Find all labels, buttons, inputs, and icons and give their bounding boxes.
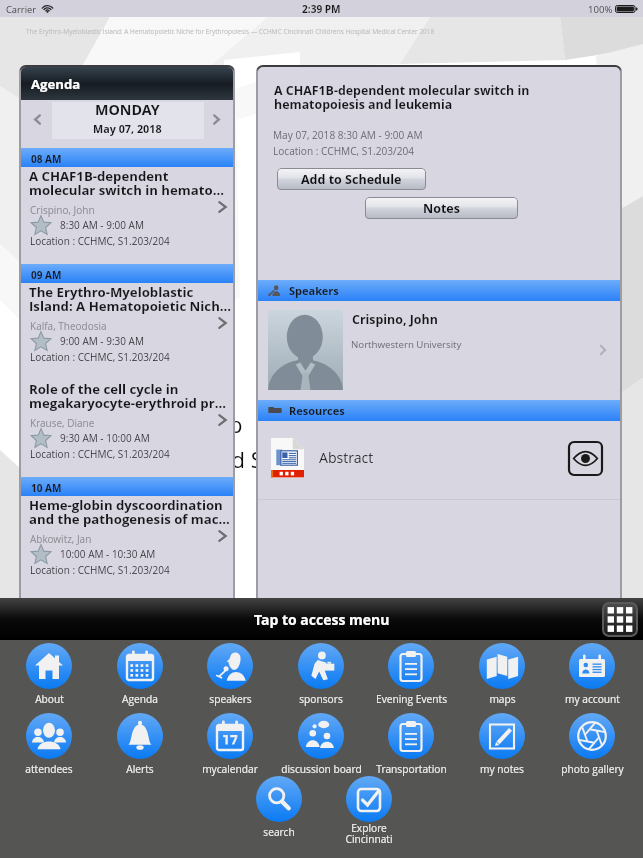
staticText: Northwestern University (351, 338, 462, 351)
button[interactable]: Role of the cell cycle in (21, 380, 233, 477)
staticText: 9:30 AM - 10:00 AM (60, 431, 150, 445)
button[interactable]: speakers (185, 643, 275, 711)
staticText: 9:00 AM - 9:30 AM (60, 334, 144, 348)
button[interactable]: A CHAF1B-dependent (21, 167, 233, 264)
button[interactable]: sponsors (276, 643, 366, 711)
staticText: Island: A Hematopoietic Nich… (29, 297, 232, 315)
button[interactable]: Open menu (602, 602, 638, 637)
staticText: 09 AM (31, 268, 62, 282)
button[interactable]: attendees (4, 713, 94, 781)
staticText: 08 AM (31, 152, 62, 166)
staticText: Abkowitz, Jan (30, 532, 92, 546)
staticText: Explore (351, 821, 387, 835)
button[interactable]: my notes (457, 713, 547, 781)
staticText: mycalendar (202, 762, 258, 776)
staticText: maps (489, 692, 516, 706)
button[interactable]: photo gallery (547, 713, 637, 781)
button[interactable]: Agenda (21, 67, 233, 100)
button[interactable]: Heme-globin dyscoordination (21, 496, 233, 593)
staticText: MONDAY (95, 100, 160, 119)
staticText: About (35, 692, 64, 706)
button[interactable]: discussion board (276, 713, 366, 781)
staticText: Speakers (289, 283, 339, 298)
staticText: Agenda (122, 692, 158, 706)
staticText: Location : CCHMC, S1.203/204 (30, 350, 170, 364)
staticText: May 07, 2018 (93, 121, 162, 136)
button[interactable]: The Erythro-Myeloblastic (21, 283, 233, 380)
staticText: Location : CCHMC, S1.203/204 (30, 447, 170, 461)
staticText: Location : CCHMC, S1.203/204 (30, 234, 170, 248)
button[interactable]: 10 AM (21, 477, 233, 496)
staticText: hematopoiesis and leukemia (274, 96, 453, 113)
button[interactable]: About (4, 643, 94, 711)
staticText: Agenda (31, 75, 81, 93)
staticText: 8:30 AM - 9:00 AM (60, 218, 144, 232)
button[interactable]: maps (457, 643, 547, 711)
staticText: and the pathogenesis of mac… (29, 510, 230, 528)
button[interactable]: Next day (203, 106, 230, 133)
button[interactable]: Notes (365, 197, 518, 219)
staticText: 100% (588, 3, 613, 16)
button[interactable]: Evening Events (366, 643, 456, 711)
staticText: Krause, Diane (30, 416, 95, 430)
staticText: A CHAF1B-dependent molecular switch in (274, 82, 530, 99)
staticText: attendees (25, 762, 73, 776)
button[interactable]: Crispino, John (258, 301, 620, 401)
staticText: Notes (423, 200, 460, 217)
staticText: Location : CCHMC, S1.203/204 (273, 144, 414, 158)
staticText: Carrier (6, 3, 36, 16)
button[interactable]: Explore (324, 776, 414, 844)
staticText: 2:39 PM (302, 2, 341, 16)
staticText: A CHAF1B-dependent (29, 167, 169, 185)
button[interactable]: Agenda (95, 643, 185, 711)
staticText: Resources (289, 403, 345, 418)
staticText: megakaryocyte-erythroid pr… (29, 394, 226, 412)
staticText: Transportation (376, 762, 447, 776)
button[interactable]: 09 AM (21, 264, 233, 283)
staticText: The Erythro-Myeloblastic Island: A Hemat… (26, 27, 435, 36)
staticText: Evening Events (376, 692, 447, 706)
button[interactable]: Transportation (366, 713, 456, 781)
button[interactable]: Tap to access menu (0, 598, 643, 640)
button[interactable]: 08 AM (21, 148, 233, 167)
button[interactable]: Alerts (95, 713, 185, 781)
staticText: my notes (480, 762, 524, 776)
staticText: Alerts (126, 762, 154, 776)
button[interactable]: search (234, 776, 324, 844)
staticText: Location : CCHMC, S1.203/204 (30, 563, 170, 577)
staticText: molecular switch in hemato… (29, 181, 224, 199)
staticText: photo gallery (561, 762, 624, 776)
button[interactable]: Previous day (24, 106, 51, 133)
staticText: Heme-globin dyscoordination (29, 496, 223, 514)
staticText: speakers (209, 692, 252, 706)
staticText: Role of the cell cycle in (29, 380, 179, 398)
staticText: 10 AM (31, 481, 62, 495)
staticText: my account (565, 692, 620, 706)
button[interactable]: Speakers (258, 280, 620, 301)
staticText: p (229, 409, 243, 439)
staticText: id S (226, 444, 263, 474)
staticText: Kalfa, Theodosia (30, 319, 107, 333)
staticText: discussion board (281, 762, 362, 776)
staticText: Crispino, John (352, 311, 438, 328)
staticText: search (263, 825, 295, 839)
staticText: 10:00 AM - 10:30 AM (60, 547, 156, 561)
button[interactable]: Preview abstract (569, 442, 602, 475)
staticText: sponsors (299, 692, 343, 706)
staticText: Cincinnati (345, 832, 393, 846)
staticText: Abstract (319, 448, 374, 467)
button[interactable]: Add to Schedule (277, 168, 426, 190)
staticText: The Erythro-Myeloblastic (29, 283, 194, 301)
button[interactable]: mycalendar (185, 713, 275, 781)
staticText: Crispino, John (30, 203, 95, 217)
staticText: Add to Schedule (301, 171, 402, 188)
button[interactable]: Resources (258, 400, 620, 421)
button[interactable]: my account (547, 643, 637, 711)
staticText: Tap to access menu (254, 610, 390, 629)
staticText: May 07, 2018 8:30 AM - 9:00 AM (273, 128, 423, 142)
